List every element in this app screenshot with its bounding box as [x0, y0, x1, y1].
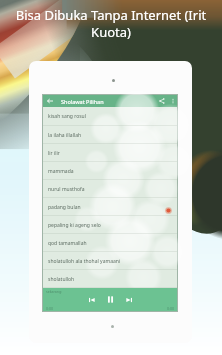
staticText: padang bulan — [48, 204, 81, 211]
staticText: la ilaha illallah — [48, 132, 82, 139]
staticText: sekarang: — [46, 289, 63, 294]
button[interactable]: More options — [168, 95, 177, 107]
button[interactable]: sholatulloh — [43, 270, 177, 288]
button[interactable]: Download — [165, 207, 172, 214]
button[interactable]: Share — [155, 95, 168, 107]
staticText: mammada — [48, 168, 74, 175]
button[interactable]: lir ilir — [43, 144, 177, 162]
button[interactable]: pepaling ki ageng selo — [43, 216, 177, 234]
button[interactable]: la ilaha illallah — [43, 126, 177, 144]
button[interactable]: Next — [123, 294, 134, 305]
button[interactable]: padang bulan — [43, 198, 177, 216]
staticText: lir ilir — [48, 150, 60, 157]
staticText: kisah sang rosul — [48, 113, 86, 120]
staticText: sholatulloh — [48, 276, 75, 283]
staticText: pepaling ki ageng selo — [48, 222, 101, 229]
staticText: sholatulloh ala thohal yamaani — [48, 258, 121, 265]
staticText: nurul musthofa — [48, 186, 85, 193]
staticText: Bisa Dibuka Tanpa Internet (Irit Kuota) — [0, 6, 222, 41]
button[interactable]: qod tamamallah — [43, 234, 177, 252]
button[interactable]: Previous — [86, 294, 97, 305]
button[interactable]: nurul musthofa — [43, 180, 177, 198]
button[interactable]: Pause — [104, 294, 116, 305]
staticText: qod tamamallah — [48, 240, 87, 247]
button[interactable]: sholatulloh ala thohal yamaani — [43, 252, 177, 270]
button[interactable]: Back — [43, 95, 56, 107]
staticText: 0:00 — [167, 306, 174, 311]
staticText: 0:00 — [46, 306, 53, 311]
staticText: Sholawat Pilihan — [61, 98, 104, 105]
button[interactable]: mammada — [43, 162, 177, 180]
button[interactable]: kisah sang rosul — [43, 107, 177, 126]
